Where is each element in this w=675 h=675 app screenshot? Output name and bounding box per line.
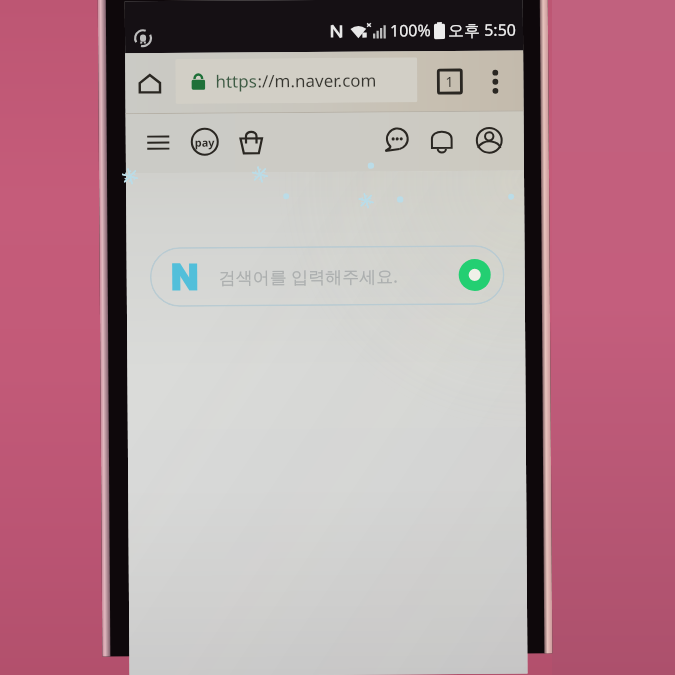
staticText: 검색어를 입력해주세요.	[219, 264, 398, 289]
button[interactable]: Menu	[137, 121, 179, 163]
staticText: 100%	[390, 19, 431, 41]
button[interactable]: Profile	[468, 119, 510, 161]
staticText: 오후 5:50	[448, 19, 516, 41]
button[interactable]: Tabs	[428, 51, 470, 112]
button[interactable]: Notifications	[421, 119, 463, 161]
button[interactable]: Home	[127, 53, 172, 114]
staticText: 1	[445, 72, 454, 91]
button[interactable]: https	[175, 57, 417, 104]
button[interactable]: Chat	[375, 119, 417, 162]
staticText: ://m.naver.com	[257, 69, 377, 92]
button[interactable]: Naver Pay	[184, 121, 226, 163]
staticText: https	[215, 69, 257, 93]
button[interactable]: 검색어를 입력해주세요.	[149, 245, 505, 307]
staticText: pay	[195, 135, 215, 150]
button[interactable]: More options	[475, 51, 515, 112]
button[interactable]: Shopping	[230, 120, 272, 163]
